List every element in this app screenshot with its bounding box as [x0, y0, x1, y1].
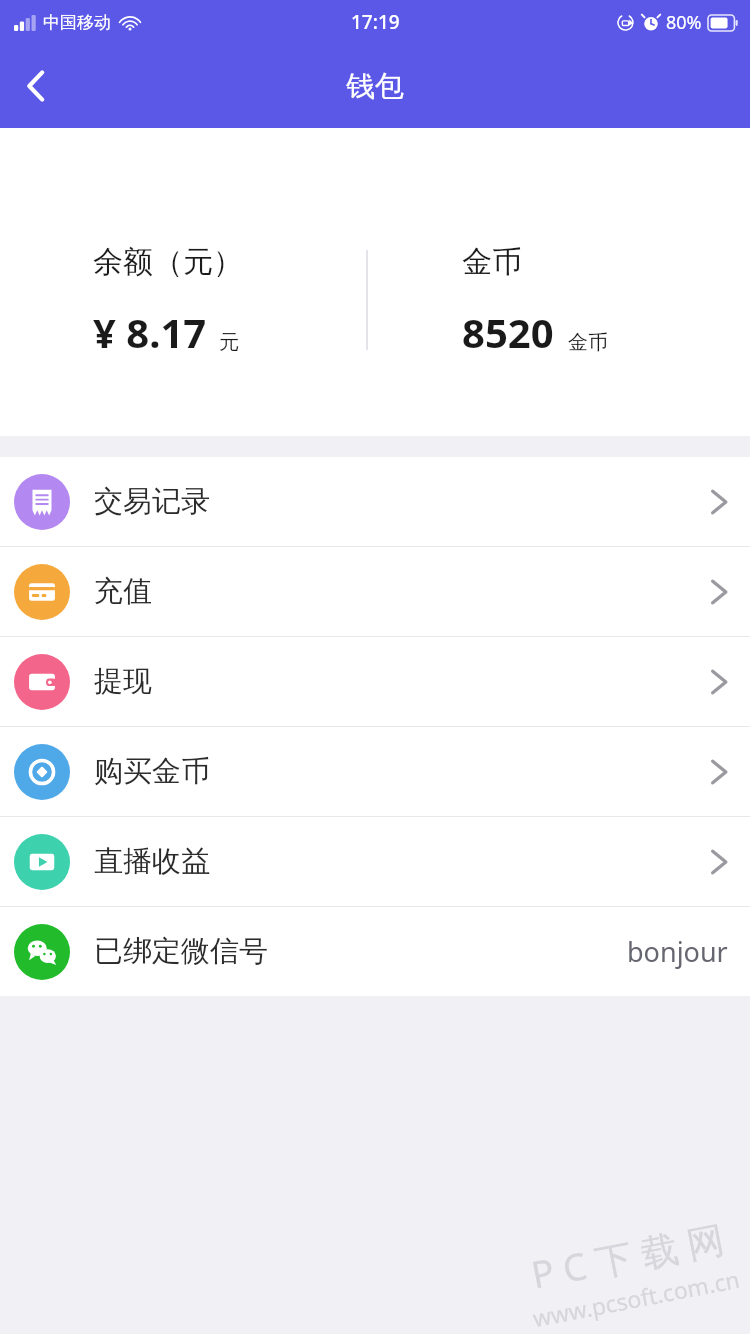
staticText: 余额（元）	[93, 243, 243, 281]
button[interactable]: 直播收益	[0, 817, 750, 906]
staticText: P C 下 载 网	[527, 1212, 729, 1300]
staticText: 金币	[568, 330, 608, 355]
staticText: 已绑定微信号	[94, 933, 268, 970]
staticText: 中国移动	[43, 12, 111, 33]
staticText: bonjour	[627, 933, 728, 970]
button[interactable]: 已绑定微信号	[0, 907, 750, 996]
staticText: 钱包	[346, 68, 404, 105]
button[interactable]: 充值	[0, 547, 750, 636]
staticText: 17:19	[351, 9, 400, 35]
staticText: www.pcsoft.com.cn	[530, 1263, 742, 1333]
staticText: 元	[219, 330, 239, 355]
staticText: 提现	[94, 663, 152, 700]
staticText: 80%	[666, 10, 702, 35]
staticText: 充值	[94, 573, 152, 610]
staticText: ¥ 8.17	[93, 305, 207, 359]
button[interactable]: 提现	[0, 637, 750, 726]
staticText: 交易记录	[94, 483, 210, 520]
staticText: 购买金币	[94, 753, 210, 790]
button[interactable]: Back	[0, 50, 72, 122]
staticText: 8520	[462, 305, 554, 359]
button[interactable]: 购买金币	[0, 727, 750, 816]
staticText: 金币	[462, 243, 522, 281]
button[interactable]: 交易记录	[0, 457, 750, 546]
staticText: 直播收益	[94, 843, 210, 880]
